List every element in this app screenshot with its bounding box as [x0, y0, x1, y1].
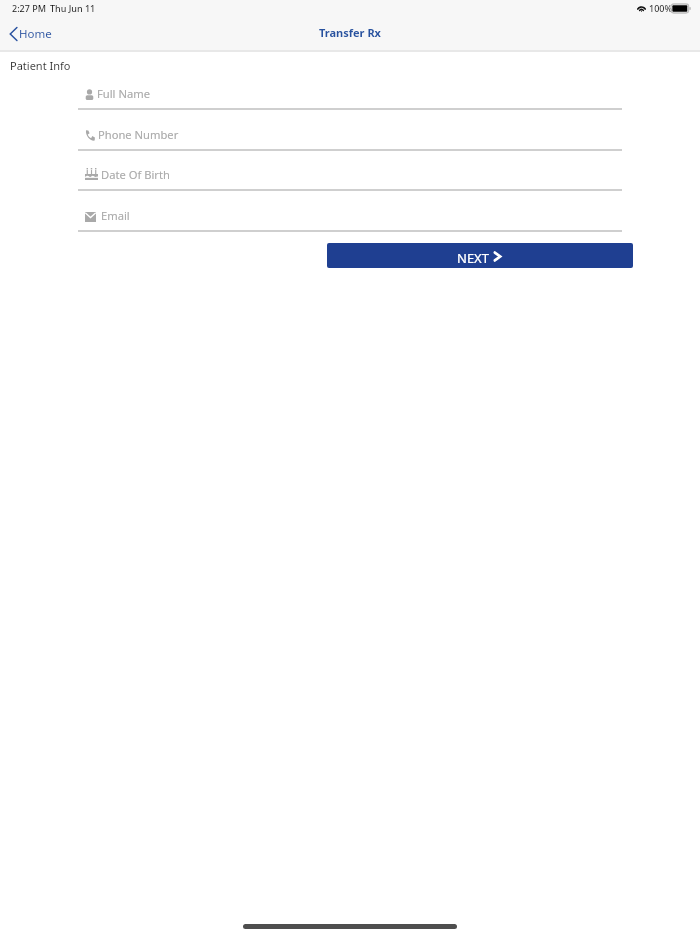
button[interactable]: Date Of Birth	[78, 164, 622, 189]
other: Back	[9, 26, 18, 42]
button[interactable]: NEXT	[327, 243, 633, 268]
staticText: Patient Info	[10, 58, 71, 73]
staticText: 2:27 PM	[12, 2, 46, 14]
staticText: Email	[101, 208, 130, 223]
button[interactable]: Email	[78, 205, 622, 230]
staticText: NEXT	[457, 249, 489, 267]
staticText: Transfer Rx	[0, 25, 700, 40]
button[interactable]: Phone Number	[78, 124, 622, 149]
staticText: 100%	[649, 2, 673, 14]
staticText: Date Of Birth	[101, 167, 170, 182]
staticText: Thu Jun 11	[50, 2, 96, 14]
staticText: Phone Number	[98, 127, 179, 142]
button[interactable]: Full Name	[78, 83, 622, 108]
staticText: Home	[19, 26, 52, 42]
staticText: Full Name	[97, 86, 150, 101]
button[interactable]: Back	[4, 21, 60, 47]
